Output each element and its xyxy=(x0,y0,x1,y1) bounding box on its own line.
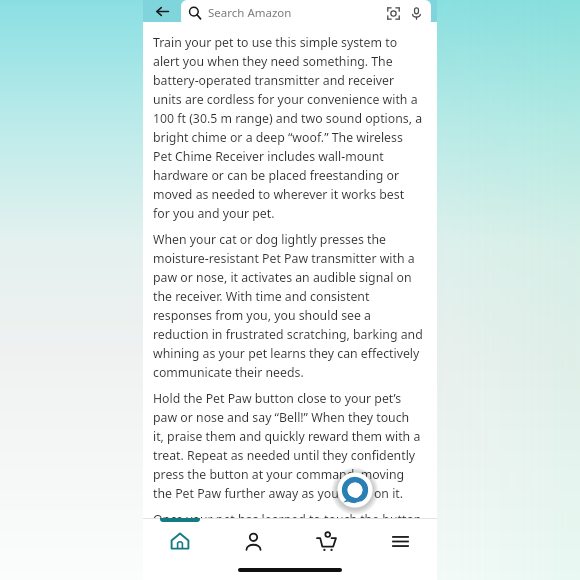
button[interactable]: Home xyxy=(143,518,216,558)
staticText: Search Amazon xyxy=(208,5,292,21)
button[interactable]: Account xyxy=(216,518,289,558)
staticText: When your cat or dog lightly presses the… xyxy=(153,231,423,380)
staticText: Train your pet to use this simple system… xyxy=(153,34,423,221)
staticText: Once your pet has learned to touch the b… xyxy=(153,511,423,518)
button[interactable]: Search Amazon xyxy=(181,0,431,26)
button[interactable]: Alexa voice assistant xyxy=(333,468,377,512)
button[interactable]: Cart, 0 items xyxy=(289,518,363,558)
button[interactable]: Menu xyxy=(363,518,437,558)
button[interactable]: Scan with camera xyxy=(385,5,401,21)
staticText: Hold the Pet Paw button close to your pe… xyxy=(153,390,423,501)
button[interactable]: Voice search xyxy=(408,5,424,21)
button[interactable]: Back xyxy=(143,0,181,22)
